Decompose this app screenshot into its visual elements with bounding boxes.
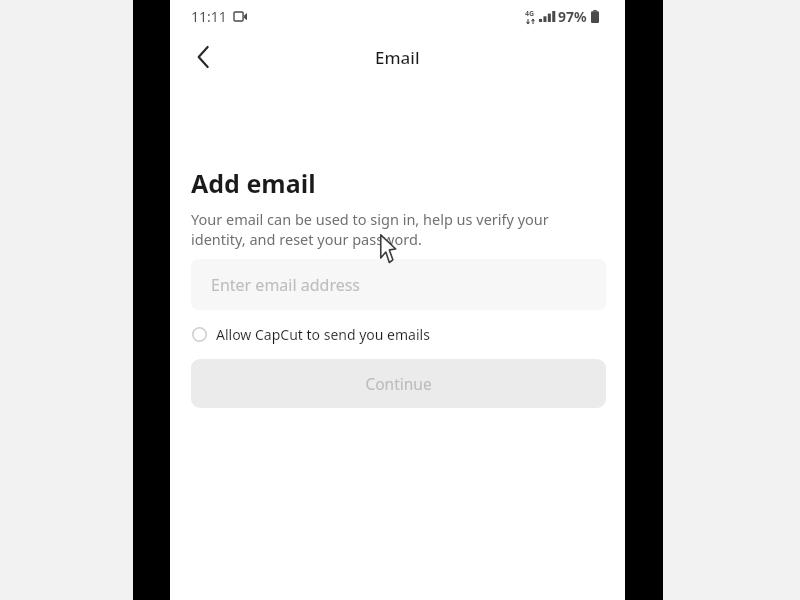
staticText: Enter email address <box>211 274 361 296</box>
button[interactable]: Allow CapCut to send you emails <box>191 316 606 352</box>
staticText: 4G <box>525 9 535 19</box>
staticText: Add email <box>191 166 316 200</box>
staticText: 97% <box>558 7 587 26</box>
button[interactable]: Enter email address <box>191 259 606 310</box>
staticText: Your email can be used to sign in, help … <box>191 209 606 250</box>
staticText: Continue <box>365 373 432 394</box>
button[interactable]: Continue <box>191 359 606 408</box>
button[interactable]: Back <box>182 36 224 78</box>
staticText: Allow CapCut to send you emails <box>216 325 430 344</box>
staticText: Email <box>375 46 420 69</box>
staticText: 11:11 <box>191 7 227 26</box>
